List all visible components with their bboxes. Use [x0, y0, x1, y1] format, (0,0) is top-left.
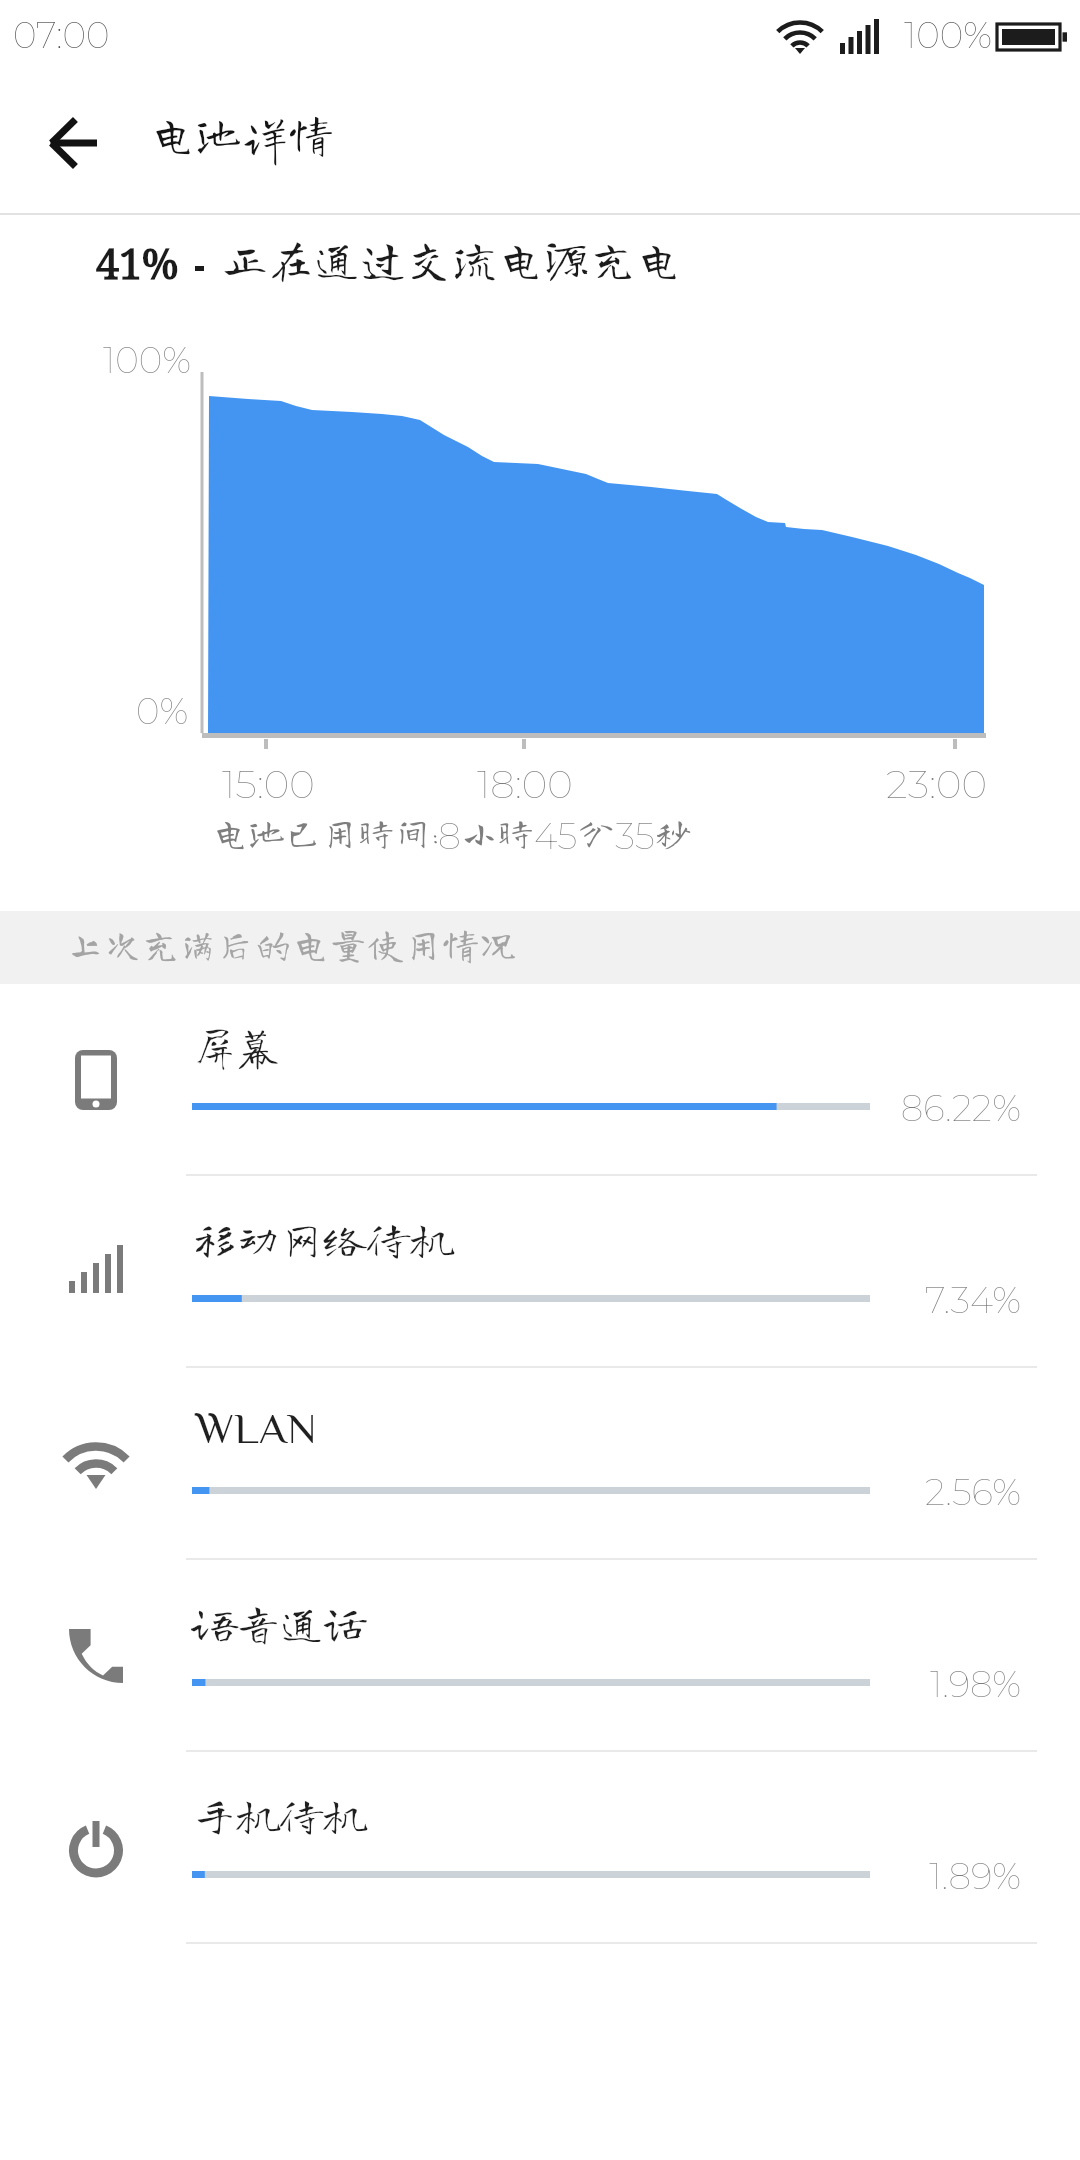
- staticText: 7.34%: [800, 1278, 1021, 1322]
- staticText: 手机待机: [193, 1793, 367, 1836]
- staticText: 0%: [136, 689, 189, 733]
- staticText: 45: [534, 814, 578, 858]
- staticText: 86.22%: [800, 1086, 1021, 1130]
- staticText: 正在通过交流电源充电: [222, 236, 682, 282]
- staticText: 秒: [655, 814, 692, 850]
- staticText: 语音通话: [193, 1601, 367, 1644]
- staticText: 100%: [904, 13, 993, 57]
- button[interactable]: 手机待机: [0, 1752, 1080, 1944]
- button[interactable]: 语音通话: [0, 1560, 1080, 1752]
- staticText: 上次充满后的电量使用情况: [67, 925, 517, 963]
- staticText: 屏幕: [193, 1025, 280, 1068]
- staticText: 分: [578, 814, 615, 850]
- button[interactable]: 移动网络待机: [0, 1176, 1080, 1368]
- button[interactable]: WLAN: [0, 1368, 1080, 1560]
- staticText: 电池已用时间:: [212, 814, 438, 850]
- button[interactable]: 屏幕: [0, 984, 1080, 1176]
- staticText: 8: [438, 814, 461, 858]
- staticText: 41%: [96, 235, 179, 291]
- staticText: WLAN: [196, 1404, 317, 1448]
- staticText: 2.56%: [800, 1470, 1021, 1514]
- staticText: 35: [615, 814, 655, 858]
- staticText: 100%: [103, 338, 192, 382]
- staticText: 07:00: [13, 13, 110, 57]
- staticText: 15:00: [222, 760, 315, 808]
- staticText: 18:00: [477, 760, 573, 808]
- button[interactable]: Back: [0, 72, 144, 213]
- staticText: 23:00: [886, 760, 987, 808]
- staticText: 移动网络待机: [193, 1217, 454, 1260]
- staticText: 小时: [461, 814, 534, 850]
- staticText: 1.89%: [800, 1854, 1021, 1898]
- staticText: 1.98%: [800, 1662, 1021, 1706]
- staticText: 电池详情: [150, 111, 334, 157]
